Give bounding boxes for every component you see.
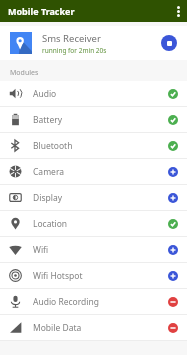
staticText: Modules	[10, 68, 39, 78]
button[interactable]: Bluetooth	[0, 133, 187, 158]
button[interactable]: Battery	[0, 107, 187, 132]
staticText: Wifi Hotspot	[33, 270, 168, 282]
button[interactable]: Wifi	[0, 237, 187, 262]
button[interactable]: Sms Receiver	[0, 26, 187, 60]
staticText: Camera	[33, 166, 168, 178]
staticText: running for 2min 20s	[42, 46, 107, 55]
button[interactable]: Audio Recording	[0, 289, 187, 314]
staticText: Mobile Tracker	[8, 5, 75, 17]
button[interactable]: Location	[0, 211, 187, 236]
staticText: Audio Recording	[33, 296, 168, 308]
button[interactable]: Camera	[0, 159, 187, 184]
button[interactable]: Mobile Data	[0, 315, 187, 340]
staticText: Mobile Data	[33, 322, 168, 334]
staticText: Sms Receiver	[42, 32, 101, 45]
button[interactable]: Wifi Hotspot	[0, 263, 187, 288]
button[interactable]: Audio	[0, 81, 187, 106]
staticText: Display	[33, 192, 168, 204]
button[interactable]: Stop service	[161, 35, 177, 51]
staticText: Battery	[33, 114, 168, 126]
staticText: Wifi	[33, 244, 168, 256]
staticText: Audio	[33, 88, 168, 100]
staticText: Location	[33, 218, 168, 230]
staticText: Bluetooth	[33, 140, 168, 152]
button[interactable]: Display	[0, 185, 187, 210]
button[interactable]: More options	[169, 0, 187, 22]
